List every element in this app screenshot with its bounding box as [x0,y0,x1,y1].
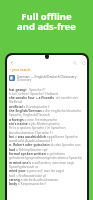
button[interactable]: German — English/Deutsch Dictionary Talk… [9,74,85,82]
staticText: • your search [10,67,31,71]
staticText: fließend [9,99,22,103]
staticText: strong = derbe Ausdrucksweise [9,177,59,181]
staticText: n. Robert oder gutschein du das Sprache … [9,142,81,146]
staticText: ein's native = jds Muttersprache [9,121,60,125]
staticText: Sprache, Englisch/Deutsch [9,112,50,116]
staticText: artificial = Kunstsprache f [9,104,50,108]
staticText: bad = Kraftausdrücke pl [9,173,46,177]
staticText: the English/German = die englische/deuts… [9,108,82,112]
staticText: Dictionary [17,78,32,82]
button[interactable]: Search [71,59,78,66]
staticText: German — English/Deutsch Dictionary Talk… [17,74,85,78]
staticText: fir in a spoken Sprache / in Sprachen [9,125,66,129]
staticText: gehobene/gesprochene/geschriebene Sprach… [9,155,83,159]
staticText: mind your = pass auf, was du sagst [9,168,65,172]
staticText: h Let' sehen i Sprache ! Halbzeit [9,91,58,95]
staticText: body = Körpersprache f [9,181,46,185]
staticText: hat gesagt Sprache f ! [9,87,46,91]
staticText: she speaks four + a fluently sie spricht… [9,95,87,99]
staticText: ausdrückt Ausdrucksweise f [9,138,53,142]
staticText: Sprachgebrauch m [9,164,39,168]
staticText: Ausdrucksweise ( Sprache f ) [9,130,53,134]
staticText: in mind one's = außerdem, was man sagt [9,160,74,164]
staticText: formal spoken written = gehobene [9,151,66,155]
staticText: Full offline and ads-free [0,10,93,33]
button[interactable]: More options [80,59,87,66]
button[interactable]: Back [8,59,15,66]
staticText: bad = Schimpfwörter npl [9,147,48,151]
staticText: bei = was ausdrücklich appellieren Sprac… [9,134,78,138]
staticText: a foreign = eine Fremdsprache [9,117,58,121]
